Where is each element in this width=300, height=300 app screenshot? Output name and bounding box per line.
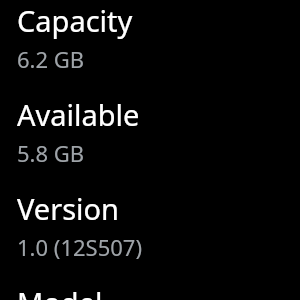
- staticText: Model: [17, 283, 103, 300]
- staticText: 1.0 (12S507): [17, 232, 142, 262]
- button[interactable]: Available: [0, 95, 300, 168]
- button[interactable]: Model: [0, 283, 300, 300]
- staticText: 6.2 GB: [17, 44, 85, 74]
- staticText: Available: [17, 95, 140, 134]
- staticText: Version: [17, 189, 119, 228]
- staticText: Capacity: [17, 1, 133, 40]
- button[interactable]: Version: [0, 189, 300, 262]
- staticText: 5.8 GB: [17, 138, 85, 168]
- button[interactable]: Capacity: [0, 1, 300, 74]
